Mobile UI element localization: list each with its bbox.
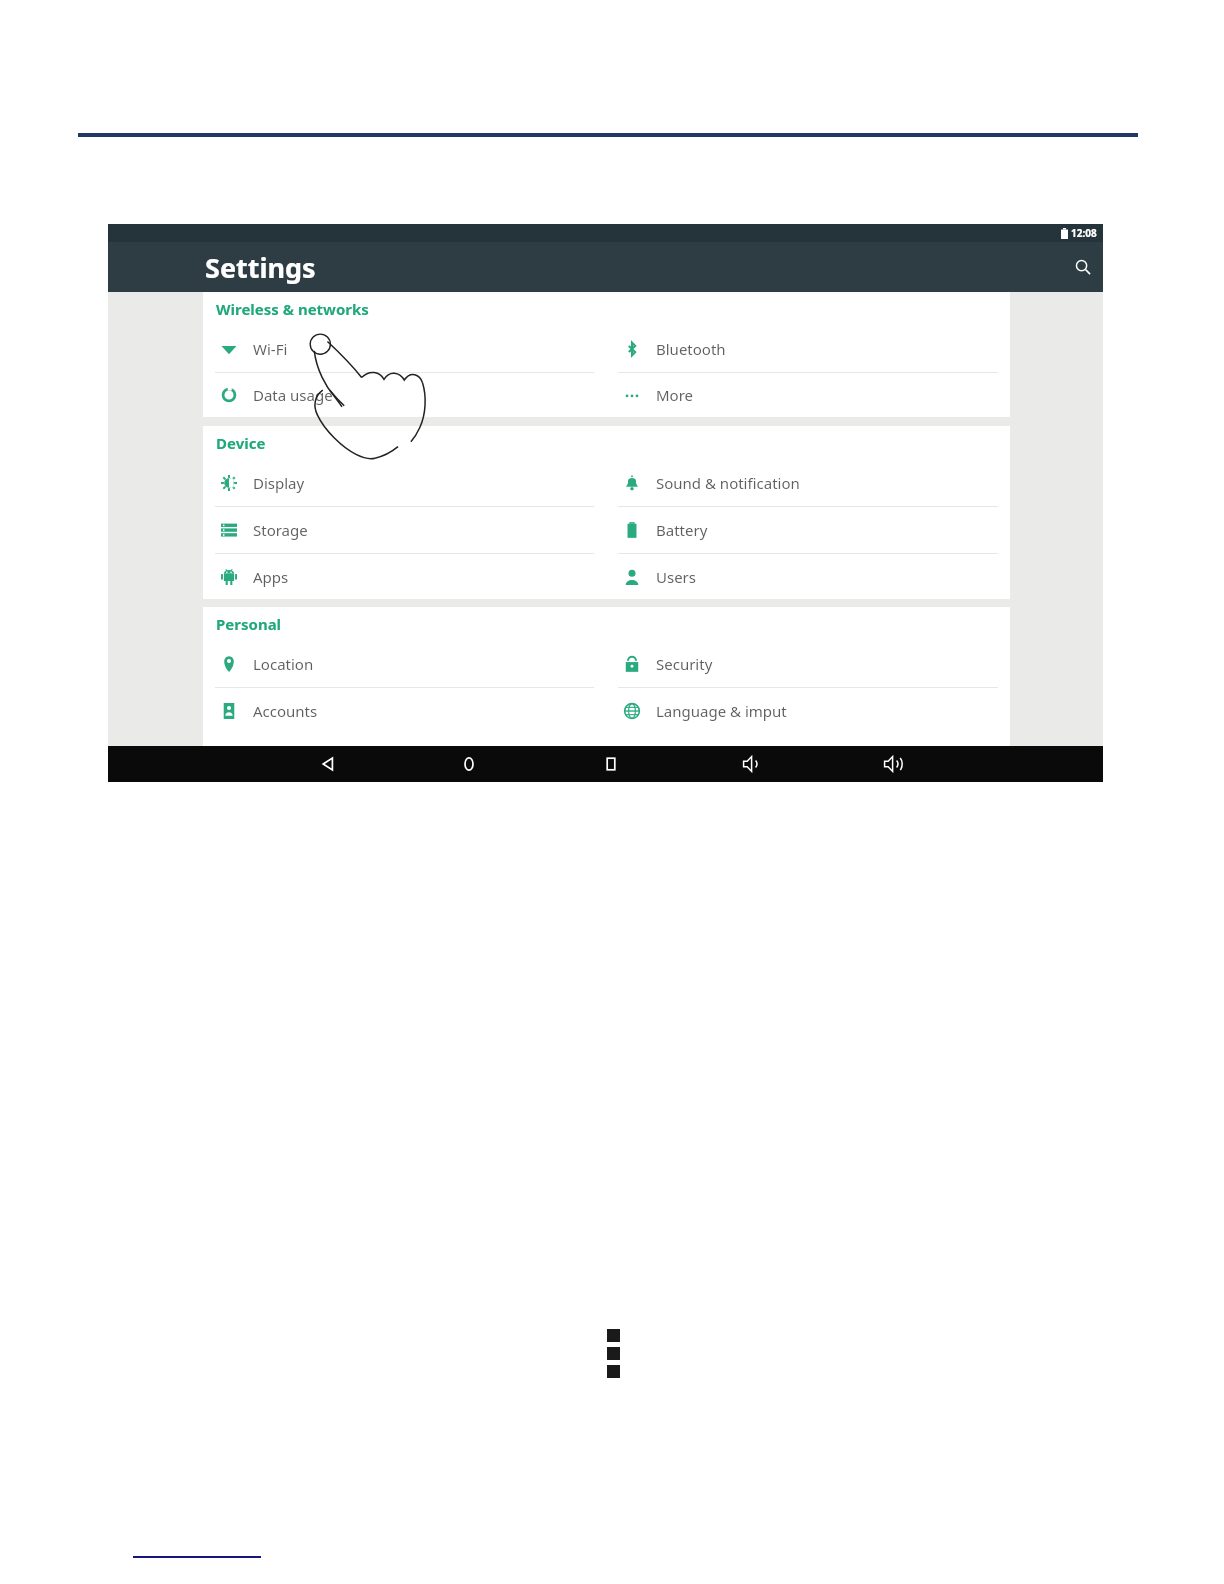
staticText: Storage: [253, 520, 308, 540]
button[interactable]: Sound & notification: [606, 460, 1010, 507]
button[interactable]: Home: [454, 749, 484, 779]
staticText: Display: [253, 473, 305, 493]
staticText: Bluetooth: [656, 339, 726, 359]
staticText: Location: [253, 654, 314, 674]
button[interactable]: Battery: [606, 507, 1010, 554]
staticText: Data usage: [253, 385, 333, 405]
staticText: Security: [656, 654, 713, 674]
staticText: More: [656, 385, 694, 405]
button[interactable]: Data usage: [203, 373, 606, 417]
button[interactable]: Volume down: [737, 749, 767, 779]
staticText: Personal: [216, 614, 282, 634]
staticText: 12:08: [1071, 226, 1097, 240]
button[interactable]: Wi-Fi: [203, 326, 606, 373]
button[interactable]: Display: [203, 460, 606, 507]
staticText: Device: [216, 433, 266, 453]
staticText: Users: [656, 567, 696, 587]
staticText: Wireless & networks: [216, 299, 369, 319]
button[interactable]: Recent apps: [596, 749, 626, 779]
staticText: Sound & notification: [656, 473, 800, 493]
button[interactable]: Back: [313, 749, 343, 779]
staticText: Wi-Fi: [253, 339, 288, 359]
button[interactable]: Language & imput: [606, 688, 1010, 734]
button[interactable]: Search: [1068, 252, 1098, 282]
staticText: Accounts: [253, 701, 318, 721]
button[interactable]: Accounts: [203, 688, 606, 734]
button[interactable]: More: [606, 373, 1010, 417]
staticText: Language & imput: [656, 701, 787, 721]
button[interactable]: Location: [203, 641, 606, 688]
button[interactable]: Bluetooth: [606, 326, 1010, 373]
button[interactable]: Storage: [203, 507, 606, 554]
staticText: Battery: [656, 520, 708, 540]
staticText: Apps: [253, 567, 289, 587]
button[interactable]: Security: [606, 641, 1010, 688]
staticText: Settings: [205, 249, 316, 286]
button[interactable]: Volume up: [878, 749, 908, 779]
button[interactable]: Users: [606, 554, 1010, 599]
button[interactable]: Apps: [203, 554, 606, 599]
